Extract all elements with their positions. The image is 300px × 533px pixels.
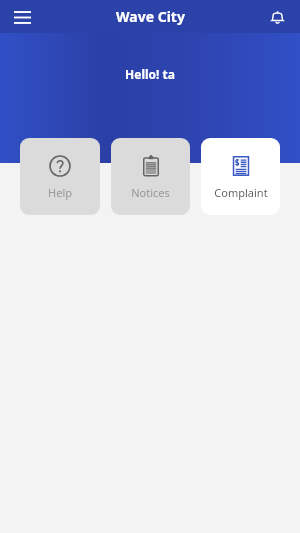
- staticText: Wave City: [116, 7, 185, 26]
- button[interactable]: Notices: [111, 138, 190, 215]
- button[interactable]: Help: [20, 138, 100, 215]
- button[interactable]: Complaint: [201, 138, 280, 215]
- button[interactable]: Notifications: [262, 2, 292, 32]
- staticText: Notices: [131, 185, 170, 200]
- button[interactable]: Open navigation menu: [6, 1, 38, 33]
- staticText: Complaint: [214, 185, 268, 200]
- staticText: Help: [48, 185, 72, 200]
- staticText: Hello! ta: [125, 66, 175, 82]
